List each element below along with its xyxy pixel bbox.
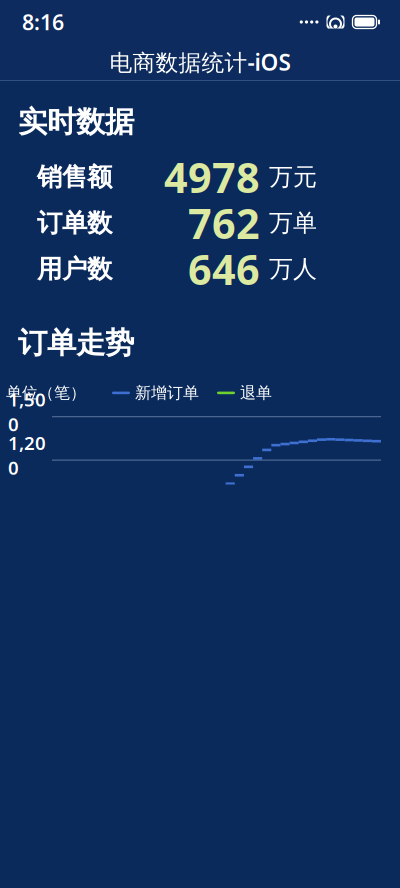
- staticText: 4978: [164, 150, 260, 204]
- staticText: 订单数: [37, 207, 112, 239]
- staticText: 新增订单: [135, 383, 199, 403]
- staticText: 万人: [269, 254, 317, 284]
- staticText: 8:16: [22, 8, 64, 36]
- staticText: 762: [188, 196, 260, 250]
- staticText: 退单: [240, 383, 272, 403]
- staticText: 万单: [269, 208, 317, 238]
- staticText: 1,500: [8, 387, 46, 436]
- staticText: 万元: [269, 162, 317, 192]
- staticText: 用户数: [37, 253, 112, 285]
- staticText: 646: [188, 242, 260, 296]
- staticText: 实时数据: [18, 104, 134, 140]
- staticText: 订单走势: [18, 325, 134, 361]
- staticText: 销售额: [37, 161, 112, 193]
- staticText: 电商数据统计-iOS: [109, 47, 290, 77]
- staticText: 1,200: [8, 430, 46, 480]
- staticText: 单位（笔）: [6, 383, 86, 403]
